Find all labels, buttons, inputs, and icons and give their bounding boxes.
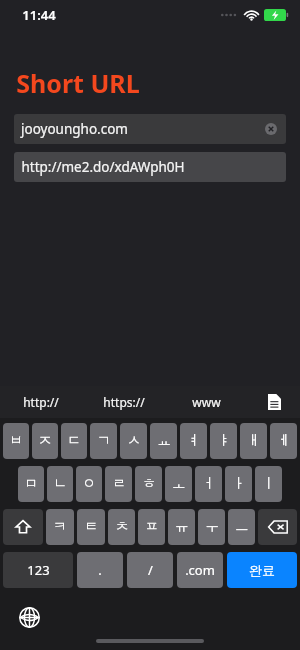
staticText: ㅊ: [115, 518, 129, 536]
button[interactable]: 123: [3, 552, 73, 588]
button[interactable]: ㅇ: [76, 466, 102, 502]
staticText: ㄴ: [53, 475, 67, 493]
button[interactable]: ㅍ: [138, 509, 165, 545]
button[interactable]: /: [127, 552, 173, 588]
button[interactable]: ㅛ: [150, 423, 177, 459]
button[interactable]: ㅏ: [225, 466, 252, 502]
button[interactable]: ㄴ: [47, 466, 73, 502]
button[interactable]: ㅓ: [195, 466, 222, 502]
staticText: https://: [103, 394, 145, 410]
staticText: ㅌ: [84, 518, 98, 536]
button[interactable]: ㅗ: [165, 466, 192, 502]
button[interactable]: ㅠ: [168, 509, 195, 545]
staticText: ㅐ: [247, 432, 261, 450]
button[interactable]: 완료: [227, 552, 297, 588]
button[interactable]: ㅣ: [255, 466, 282, 502]
button[interactable]: ㅜ: [198, 509, 225, 545]
staticText: ㅔ: [277, 432, 291, 450]
button[interactable]: ㄷ: [61, 423, 87, 459]
button[interactable]: ㄹ: [105, 466, 132, 502]
button[interactable]: Backspace: [258, 509, 297, 545]
staticText: ㅛ: [157, 432, 171, 450]
staticText: Short URL: [16, 66, 140, 100]
staticText: ㅋ: [53, 518, 67, 536]
staticText: .: [98, 561, 102, 579]
staticText: www: [192, 394, 221, 410]
button[interactable]: http://: [0, 394, 82, 410]
button[interactable]: ㄱ: [90, 423, 117, 459]
button[interactable]: .: [77, 552, 123, 588]
staticText: ㅜ: [205, 518, 219, 536]
staticText: ㅂ: [9, 432, 23, 450]
button[interactable]: ㅑ: [210, 423, 237, 459]
staticText: .com: [185, 561, 215, 579]
staticText: ㄹ: [112, 475, 126, 493]
button[interactable]: ㅈ: [32, 423, 58, 459]
button[interactable]: ㅊ: [108, 509, 135, 545]
staticText: ㅓ: [202, 475, 216, 493]
button[interactable]: Change keyboard language: [14, 602, 44, 632]
button[interactable]: ㅅ: [120, 423, 147, 459]
button[interactable]: ㅋ: [46, 509, 74, 545]
staticText: http://: [23, 394, 59, 410]
staticText: http://me2.do/xdAWph0H: [21, 158, 185, 176]
staticText: ㅇ: [82, 475, 96, 493]
staticText: ㅕ: [187, 432, 201, 450]
button[interactable]: ㅂ: [3, 423, 29, 459]
button[interactable]: http://me2.do/xdAWph0H: [14, 152, 286, 182]
button[interactable]: ㅔ: [270, 423, 297, 459]
button[interactable]: https://: [82, 394, 165, 410]
staticText: /: [148, 561, 153, 579]
staticText: ㄷ: [67, 432, 81, 450]
staticText: ㄱ: [97, 432, 111, 450]
staticText: ㅡ: [235, 518, 249, 536]
staticText: ㅏ: [232, 475, 246, 493]
staticText: 완료: [249, 562, 275, 578]
staticText: ㅣ: [262, 475, 276, 493]
staticText: jooyoungho.com: [21, 120, 128, 138]
staticText: ㅁ: [24, 475, 38, 493]
staticText: 123: [27, 561, 50, 579]
staticText: ㅗ: [172, 475, 186, 493]
button[interactable]: jooyoungho.com: [14, 114, 286, 144]
button[interactable]: ㅎ: [135, 466, 162, 502]
staticText: ㅠ: [175, 518, 189, 536]
staticText: ㅍ: [145, 518, 159, 536]
staticText: ㅎ: [142, 475, 156, 493]
button[interactable]: ㅐ: [240, 423, 267, 459]
button[interactable]: .com: [177, 552, 223, 588]
staticText: 11:44: [22, 6, 56, 24]
button[interactable]: Clear text: [262, 120, 280, 138]
button[interactable]: ㅡ: [228, 509, 255, 545]
button[interactable]: ㅌ: [77, 509, 105, 545]
staticText: ㅑ: [217, 432, 231, 450]
button[interactable]: ㅁ: [18, 466, 44, 502]
button[interactable]: Paste document: [248, 386, 300, 418]
button[interactable]: Shift: [3, 509, 43, 545]
button[interactable]: ㅕ: [180, 423, 207, 459]
staticText: ㅈ: [38, 432, 52, 450]
staticText: ㅅ: [127, 432, 141, 450]
button[interactable]: www: [165, 394, 248, 410]
